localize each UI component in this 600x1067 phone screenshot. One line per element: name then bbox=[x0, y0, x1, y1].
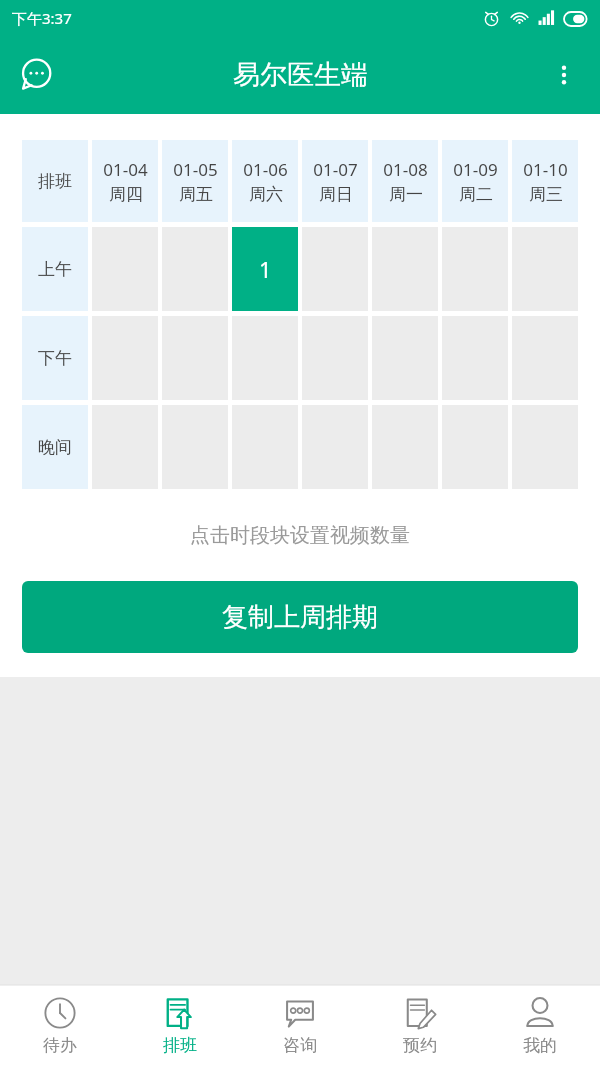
staticText: 点击时段块设置视频数量 bbox=[190, 523, 410, 548]
staticText: 易尔医生端 bbox=[233, 58, 368, 92]
staticText: 01-06 bbox=[243, 158, 288, 181]
button[interactable]: 我的 bbox=[480, 985, 600, 1067]
button[interactable]: 排班 bbox=[120, 985, 240, 1067]
staticText: 01-09 bbox=[453, 158, 498, 181]
staticText: 咨询 bbox=[283, 1035, 317, 1056]
button[interactable]: 待办 bbox=[0, 985, 120, 1067]
button[interactable]: 1 bbox=[232, 227, 298, 311]
staticText: 排班 bbox=[163, 1035, 197, 1056]
staticText: 待办 bbox=[43, 1035, 77, 1056]
button[interactable]: 咨询 bbox=[240, 985, 360, 1067]
staticText: 预约 bbox=[403, 1035, 437, 1056]
button[interactable]: More options bbox=[536, 47, 592, 103]
staticText: 01-04 bbox=[103, 158, 148, 181]
button[interactable]: 预约 bbox=[360, 985, 480, 1067]
staticText: 周四 bbox=[109, 184, 143, 205]
staticText: 晚间 bbox=[38, 437, 72, 458]
staticText: 1 bbox=[259, 254, 272, 284]
staticText: 周一 bbox=[389, 184, 423, 205]
button[interactable]: 复制上周排期 bbox=[22, 581, 578, 653]
staticText: 01-07 bbox=[313, 158, 358, 181]
staticText: 周日 bbox=[319, 184, 353, 205]
staticText: 周三 bbox=[529, 184, 563, 205]
staticText: 上午 bbox=[38, 259, 72, 280]
button[interactable]: Messages bbox=[8, 47, 64, 103]
staticText: 复制上周排期 bbox=[222, 601, 378, 634]
staticText: 我的 bbox=[523, 1035, 557, 1056]
staticText: 下午3:37 bbox=[12, 8, 72, 28]
staticText: 周五 bbox=[179, 184, 213, 205]
staticText: 01-08 bbox=[383, 158, 428, 181]
staticText: 排班 bbox=[38, 171, 72, 192]
staticText: 01-10 bbox=[523, 158, 568, 181]
staticText: 下午 bbox=[38, 348, 72, 369]
staticText: 01-05 bbox=[173, 158, 218, 181]
staticText: 周六 bbox=[249, 184, 283, 205]
staticText: 周二 bbox=[459, 184, 493, 205]
